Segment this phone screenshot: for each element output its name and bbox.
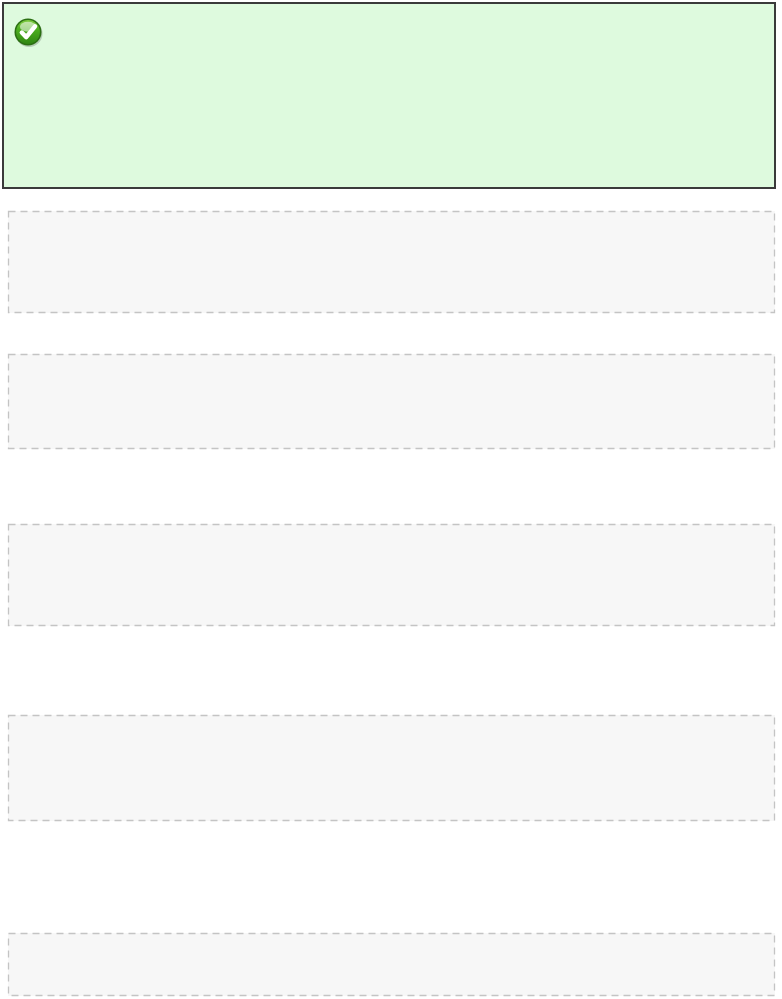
button[interactable]: Placeholder panel 1 — [8, 211, 775, 313]
button[interactable]: Placeholder panel 5 — [8, 933, 775, 996]
button[interactable]: Placeholder panel 2 — [8, 354, 775, 449]
button[interactable]: Success notice — [2, 2, 776, 189]
button[interactable]: Placeholder panel 3 — [8, 524, 775, 626]
button[interactable]: Placeholder panel 4 — [8, 715, 775, 821]
